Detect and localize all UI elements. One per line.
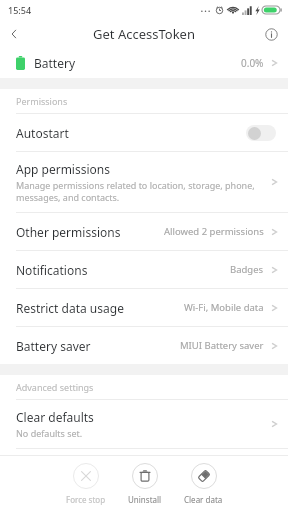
staticText: Restrict data usage <box>16 300 124 316</box>
button[interactable]: Clear data <box>180 461 227 507</box>
button[interactable]: Autostart <box>0 114 288 151</box>
button[interactable]: App permissions <box>0 152 288 212</box>
button[interactable]: Battery <box>0 48 288 78</box>
staticText: Badges <box>230 263 264 276</box>
button[interactable]: Other permissions <box>0 213 288 250</box>
staticText: Uninstall <box>128 494 162 505</box>
button[interactable]: Autostart toggle <box>246 125 276 141</box>
staticText: 15:54 <box>8 4 32 16</box>
staticText: Battery saver <box>16 338 91 354</box>
staticText: Battery <box>34 55 76 71</box>
button[interactable]: Restrict data usage <box>0 289 288 326</box>
staticText: Notifications <box>16 262 88 278</box>
staticText: No defaults set. <box>16 427 83 439</box>
staticText: Clear data <box>184 494 223 505</box>
staticText: messages, and contacts. <box>16 191 120 203</box>
button[interactable]: Uninstall <box>124 461 166 507</box>
button[interactable]: Back <box>0 20 28 48</box>
button[interactable]: Force stop <box>62 461 110 507</box>
staticText: Get AccessToken <box>93 25 195 43</box>
button[interactable]: Battery saver <box>0 327 288 364</box>
staticText: Other permissions <box>16 224 121 240</box>
staticText: Advanced settings <box>16 381 94 393</box>
staticText: Permissions <box>16 95 68 107</box>
staticText: Wi-Fi, Mobile data <box>184 301 264 314</box>
button[interactable]: Clear defaults <box>0 400 288 448</box>
button[interactable]: App info <box>258 21 284 47</box>
staticText: Allowed 2 permissions <box>164 225 264 238</box>
staticText: App permissions <box>16 161 110 177</box>
button[interactable]: Notifications <box>0 251 288 288</box>
staticText: Force stop <box>66 494 106 505</box>
staticText: 0.0% <box>241 56 264 70</box>
staticText: Manage permissions related to location, … <box>16 179 255 191</box>
staticText: MIUI Battery saver <box>180 339 264 352</box>
staticText: Autostart <box>16 125 69 141</box>
staticText: Clear defaults <box>16 409 94 425</box>
